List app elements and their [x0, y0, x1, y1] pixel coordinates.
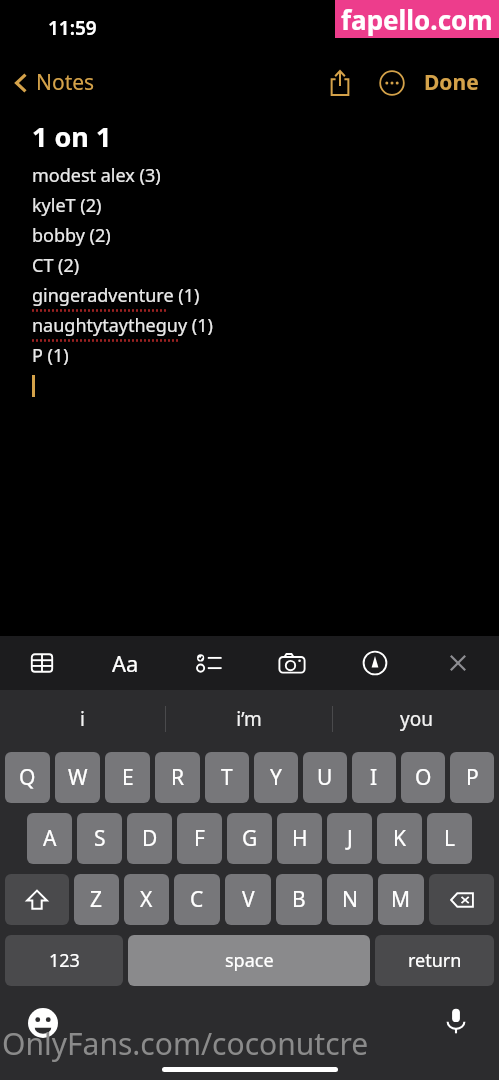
staticText: P (1): [32, 343, 69, 368]
staticText: Y: [270, 763, 282, 792]
button[interactable]: Close: [416, 636, 499, 690]
button[interactable]: E: [105, 752, 150, 803]
staticText: N: [342, 885, 358, 914]
button[interactable]: A: [27, 813, 72, 864]
button[interactable]: K: [377, 813, 422, 864]
staticText: kyleT (2): [32, 193, 102, 218]
staticText: 1 on 1: [32, 118, 112, 155]
button[interactable]: Done: [416, 60, 487, 105]
staticText: A: [43, 824, 57, 853]
button[interactable]: J: [327, 813, 372, 864]
button[interactable]: I: [352, 752, 396, 803]
button[interactable]: L: [427, 813, 472, 864]
staticText: H: [292, 824, 308, 853]
staticText: S: [94, 824, 106, 853]
staticText: U: [317, 763, 333, 792]
staticText: P: [466, 763, 479, 792]
button[interactable]: Delete: [429, 874, 494, 925]
staticText: 123: [49, 948, 80, 973]
staticText: F: [194, 824, 205, 853]
button[interactable]: O: [401, 752, 445, 803]
button[interactable]: D: [127, 813, 172, 864]
button[interactable]: S: [77, 813, 122, 864]
button[interactable]: More options: [370, 61, 414, 105]
staticText: modest alex (3): [32, 163, 161, 188]
button[interactable]: F: [177, 813, 222, 864]
button[interactable]: Share: [318, 61, 362, 105]
button[interactable]: Z: [74, 874, 119, 925]
button[interactable]: W: [55, 752, 100, 803]
button[interactable]: Shift: [5, 874, 69, 925]
button[interactable]: T: [205, 752, 249, 803]
button[interactable]: P: [450, 752, 494, 803]
button[interactable]: i’m: [166, 690, 332, 748]
button[interactable]: Emoji: [22, 1002, 64, 1044]
staticText: M: [391, 885, 411, 914]
button[interactable]: C: [174, 874, 220, 925]
staticText: O: [415, 763, 432, 792]
button[interactable]: Checklist: [167, 636, 250, 690]
staticText: E: [122, 763, 134, 792]
staticText: naughtytaytheguy (1): [32, 313, 213, 338]
staticText: I: [370, 763, 378, 792]
button[interactable]: G: [227, 813, 272, 864]
button[interactable]: Insert table: [0, 636, 84, 690]
button[interactable]: Dictation: [435, 1000, 477, 1042]
button[interactable]: Camera: [250, 636, 333, 690]
staticText: Notes: [36, 68, 95, 97]
staticText: 11:59: [48, 15, 97, 41]
staticText: J: [347, 824, 353, 853]
button[interactable]: U: [303, 752, 347, 803]
button[interactable]: Y: [254, 752, 298, 803]
staticText: gingeradventure (1): [32, 283, 200, 308]
button[interactable]: B: [276, 874, 322, 925]
staticText: Aa: [112, 648, 139, 678]
button[interactable]: N: [327, 874, 373, 925]
staticText: space: [225, 948, 274, 973]
staticText: C: [190, 885, 204, 914]
staticText: i’m: [236, 706, 262, 732]
staticText: Z: [90, 885, 103, 914]
staticText: D: [142, 824, 158, 853]
staticText: K: [393, 824, 406, 853]
button[interactable]: space: [128, 935, 370, 986]
staticText: CT (2): [32, 253, 80, 278]
button[interactable]: Q: [5, 752, 50, 803]
staticText: G: [242, 824, 258, 853]
staticText: B: [292, 885, 306, 914]
button[interactable]: i: [0, 690, 165, 748]
button[interactable]: V: [225, 874, 271, 925]
button[interactable]: M: [378, 874, 424, 925]
button[interactable]: X: [124, 874, 169, 925]
staticText: i: [80, 706, 85, 732]
staticText: Q: [19, 763, 36, 792]
staticText: OnlyFans.com/coconutcre: [2, 1023, 369, 1064]
staticText: W: [68, 763, 88, 792]
staticText: you: [400, 706, 433, 732]
button[interactable]: you: [333, 690, 499, 748]
button[interactable]: Notes: [0, 64, 103, 101]
staticText: return: [408, 948, 462, 973]
button[interactable]: 123: [5, 935, 123, 986]
staticText: T: [221, 763, 233, 792]
staticText: R: [171, 763, 185, 792]
staticText: bobby (2): [32, 223, 111, 248]
staticText: fapello.com: [341, 2, 493, 37]
button[interactable]: return: [375, 935, 494, 986]
button[interactable]: Markup: [333, 636, 416, 690]
button[interactable]: H: [277, 813, 322, 864]
staticText: L: [444, 824, 456, 853]
staticText: V: [242, 885, 255, 914]
button[interactable]: Aa: [84, 636, 167, 690]
staticText: Done: [424, 68, 479, 97]
staticText: X: [140, 885, 153, 914]
button[interactable]: R: [155, 752, 200, 803]
